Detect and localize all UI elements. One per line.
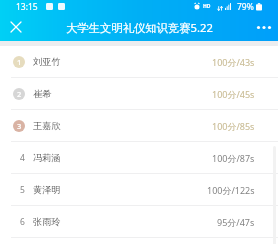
staticText: 13:15 xyxy=(16,1,38,13)
staticText: 95分/47s xyxy=(217,216,255,228)
staticText: 崔希 xyxy=(33,88,52,100)
staticText: 大学生文明礼仪知识竞赛5.22 xyxy=(66,20,213,35)
staticText: HD xyxy=(203,3,211,10)
button[interactable]: More options xyxy=(246,14,278,40)
staticText: 100分/122s xyxy=(207,184,255,196)
button[interactable]: 2 xyxy=(0,78,278,110)
staticText: 100分/43s xyxy=(212,56,255,68)
button[interactable]: 5 xyxy=(0,174,278,206)
staticText: 2 xyxy=(17,89,22,99)
staticText: 王嘉欣 xyxy=(33,120,61,132)
staticText: 100分/85s xyxy=(212,120,255,132)
staticText: 79% xyxy=(237,1,254,13)
staticText: 4 xyxy=(20,152,25,164)
button[interactable]: 4 xyxy=(0,142,278,174)
staticText: 冯莉涵 xyxy=(33,152,61,164)
staticText: 黄泽明 xyxy=(33,184,61,196)
staticText: 100分/45s xyxy=(212,88,255,100)
button[interactable]: 1 xyxy=(0,46,278,78)
button[interactable]: 3 xyxy=(0,110,278,142)
staticText: 100分/87s xyxy=(212,152,255,164)
staticText: 6 xyxy=(20,216,25,228)
staticText: 张雨玲 xyxy=(33,216,61,228)
staticText: 1 xyxy=(17,57,22,67)
staticText: 5 xyxy=(20,184,25,196)
button[interactable]: 6 xyxy=(0,206,278,238)
staticText: 刘亚竹 xyxy=(33,56,61,68)
staticText: 3 xyxy=(17,121,22,131)
button[interactable]: Close xyxy=(0,14,32,40)
